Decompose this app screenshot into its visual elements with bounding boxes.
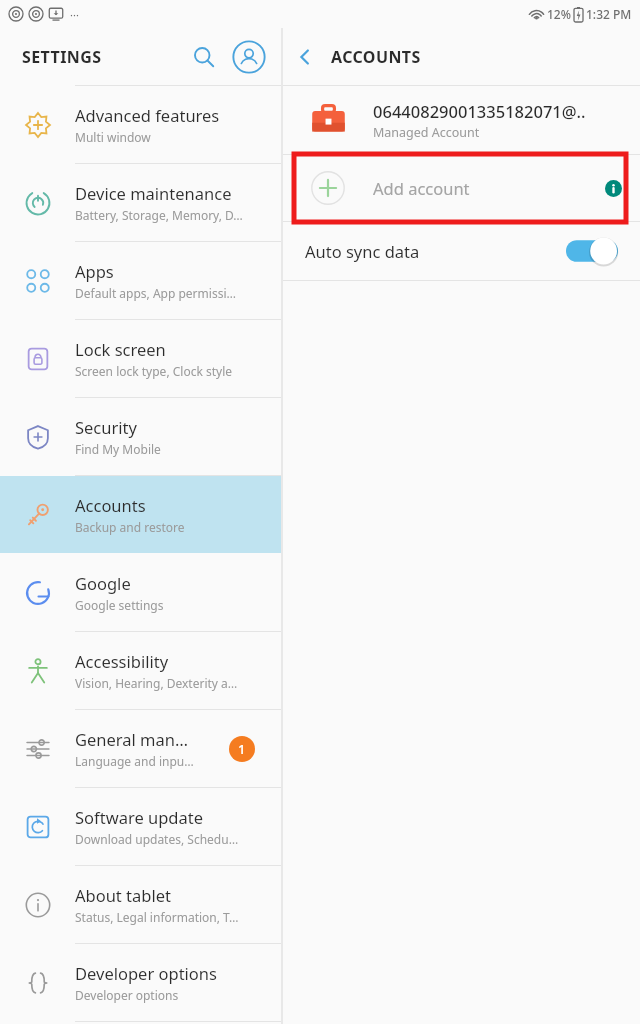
staticText: Multi window xyxy=(75,129,151,145)
button[interactable]: Security xyxy=(0,398,281,475)
staticText: About tablet xyxy=(75,884,171,906)
staticText: Language and inpu… xyxy=(75,753,194,769)
button[interactable]: 06440829001335182071@.. xyxy=(283,86,640,154)
staticText: ··· xyxy=(70,7,79,22)
button[interactable]: Auto sync data xyxy=(283,222,640,280)
button[interactable]: Advanced features xyxy=(0,86,281,163)
staticText: Google settings xyxy=(75,597,164,613)
staticText: 1:32 PM xyxy=(586,6,632,22)
staticText: Accounts xyxy=(75,494,146,516)
staticText: Apps xyxy=(75,260,114,282)
button[interactable]: Accounts xyxy=(0,476,281,553)
staticText: Google xyxy=(75,572,131,594)
staticText: Vision, Hearing, Dexterity a… xyxy=(75,675,238,691)
button[interactable]: About tablet xyxy=(0,866,281,943)
staticText: 12% xyxy=(547,6,571,22)
staticText: Advanced features xyxy=(75,104,220,126)
button[interactable]: Device maintenance xyxy=(0,164,281,241)
staticText: 1 xyxy=(238,740,246,758)
staticText: 06440829001335182071@.. xyxy=(373,100,586,122)
staticText: Screen lock type, Clock style xyxy=(75,363,233,379)
button[interactable]: Back xyxy=(283,35,327,79)
button[interactable]: Auto sync data toggle xyxy=(566,236,618,266)
staticText: Accessibility xyxy=(75,650,169,672)
button[interactable]: Developer options xyxy=(0,944,281,1021)
staticText: Security xyxy=(75,416,137,438)
staticText: Auto sync data xyxy=(305,240,566,262)
button[interactable]: Google xyxy=(0,554,281,631)
button[interactable]: Software update xyxy=(0,788,281,865)
staticText: Device maintenance xyxy=(75,182,232,204)
staticText: Battery, Storage, Memory, D… xyxy=(75,207,243,223)
staticText: Download updates, Schedu… xyxy=(75,831,239,847)
button[interactable]: Search xyxy=(182,35,226,79)
button[interactable]: Apps xyxy=(0,242,281,319)
staticText: Status, Legal information, T… xyxy=(75,909,239,925)
button[interactable]: General man… xyxy=(0,710,281,787)
staticText: SETTINGS xyxy=(22,46,102,68)
staticText: Backup and restore xyxy=(75,519,185,535)
button[interactable]: Add account xyxy=(283,155,640,221)
button[interactable]: Information xyxy=(596,171,630,205)
staticText: ACCOUNTS xyxy=(331,46,421,68)
staticText: Default apps, App permissi… xyxy=(75,285,236,301)
staticText: Lock screen xyxy=(75,338,166,360)
staticText: Developer options xyxy=(75,987,179,1003)
staticText: Find My Mobile xyxy=(75,441,161,457)
staticText: Developer options xyxy=(75,962,217,984)
button[interactable]: Accessibility xyxy=(0,632,281,709)
button[interactable]: Lock screen xyxy=(0,320,281,397)
staticText: Software update xyxy=(75,806,203,828)
staticText: Managed Account xyxy=(373,124,480,141)
staticText: Add account xyxy=(373,177,596,199)
button[interactable]: Account xyxy=(226,34,272,80)
staticText: General man… xyxy=(75,728,189,750)
